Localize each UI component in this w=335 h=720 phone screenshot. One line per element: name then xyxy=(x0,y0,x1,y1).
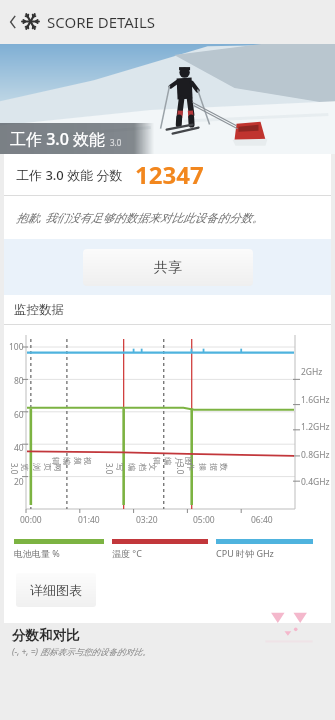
staticText: 数据操作 3.0 xyxy=(175,463,229,477)
staticText: 20 xyxy=(14,476,24,488)
staticText: 抱歉, 我们没有足够的数据来对比此设备的分数。 xyxy=(16,210,264,226)
staticText: 监控数据 xyxy=(14,302,64,318)
staticText: 3.0 xyxy=(110,137,122,148)
staticText: 0.8GHz xyxy=(301,449,330,461)
staticText: 详细图表 xyxy=(30,582,82,598)
staticText: 视频编辑 xyxy=(51,457,93,471)
staticText: 01:40 xyxy=(78,514,100,526)
staticText: 电池电量 % xyxy=(14,547,60,559)
staticText: 40 xyxy=(14,442,24,454)
staticText: 100 xyxy=(9,341,24,353)
staticText: 80 xyxy=(14,375,24,387)
staticText: 2GHz xyxy=(301,366,323,378)
staticText: 03:20 xyxy=(136,514,158,526)
button[interactable]: Back xyxy=(5,7,21,37)
staticText: 1.2GHz xyxy=(301,421,330,433)
staticText: 工作 3.0 效能 xyxy=(10,128,105,150)
button[interactable]: 详细图表 xyxy=(16,573,96,607)
staticText: 图片编辑 xyxy=(152,457,194,471)
staticText: 温度 °C xyxy=(112,547,142,559)
staticText: 12347 xyxy=(135,158,204,191)
staticText: CPU 时钟 GHz xyxy=(216,547,274,559)
staticText: 1.6GHz xyxy=(301,394,330,406)
staticText: SCORE DETAILS xyxy=(47,12,156,32)
staticText: (-, +, =) 图标表示与您的设备的对比。 xyxy=(12,646,151,658)
staticText: 00:00 xyxy=(20,514,42,526)
button[interactable]: 共享 xyxy=(83,249,253,286)
staticText: 60 xyxy=(14,409,24,421)
staticText: 共享 xyxy=(154,259,182,277)
staticText: 0.4GHz xyxy=(301,476,330,488)
staticText: 文档编写 3.0 xyxy=(104,463,158,477)
staticText: 05:00 xyxy=(193,514,215,526)
staticText: 分数和对比 xyxy=(12,627,80,644)
staticText: 06:40 xyxy=(251,514,273,526)
staticText: 工作 3.0 效能 分数 xyxy=(16,166,123,184)
staticText: 网页浏览 3.0 xyxy=(9,463,63,477)
